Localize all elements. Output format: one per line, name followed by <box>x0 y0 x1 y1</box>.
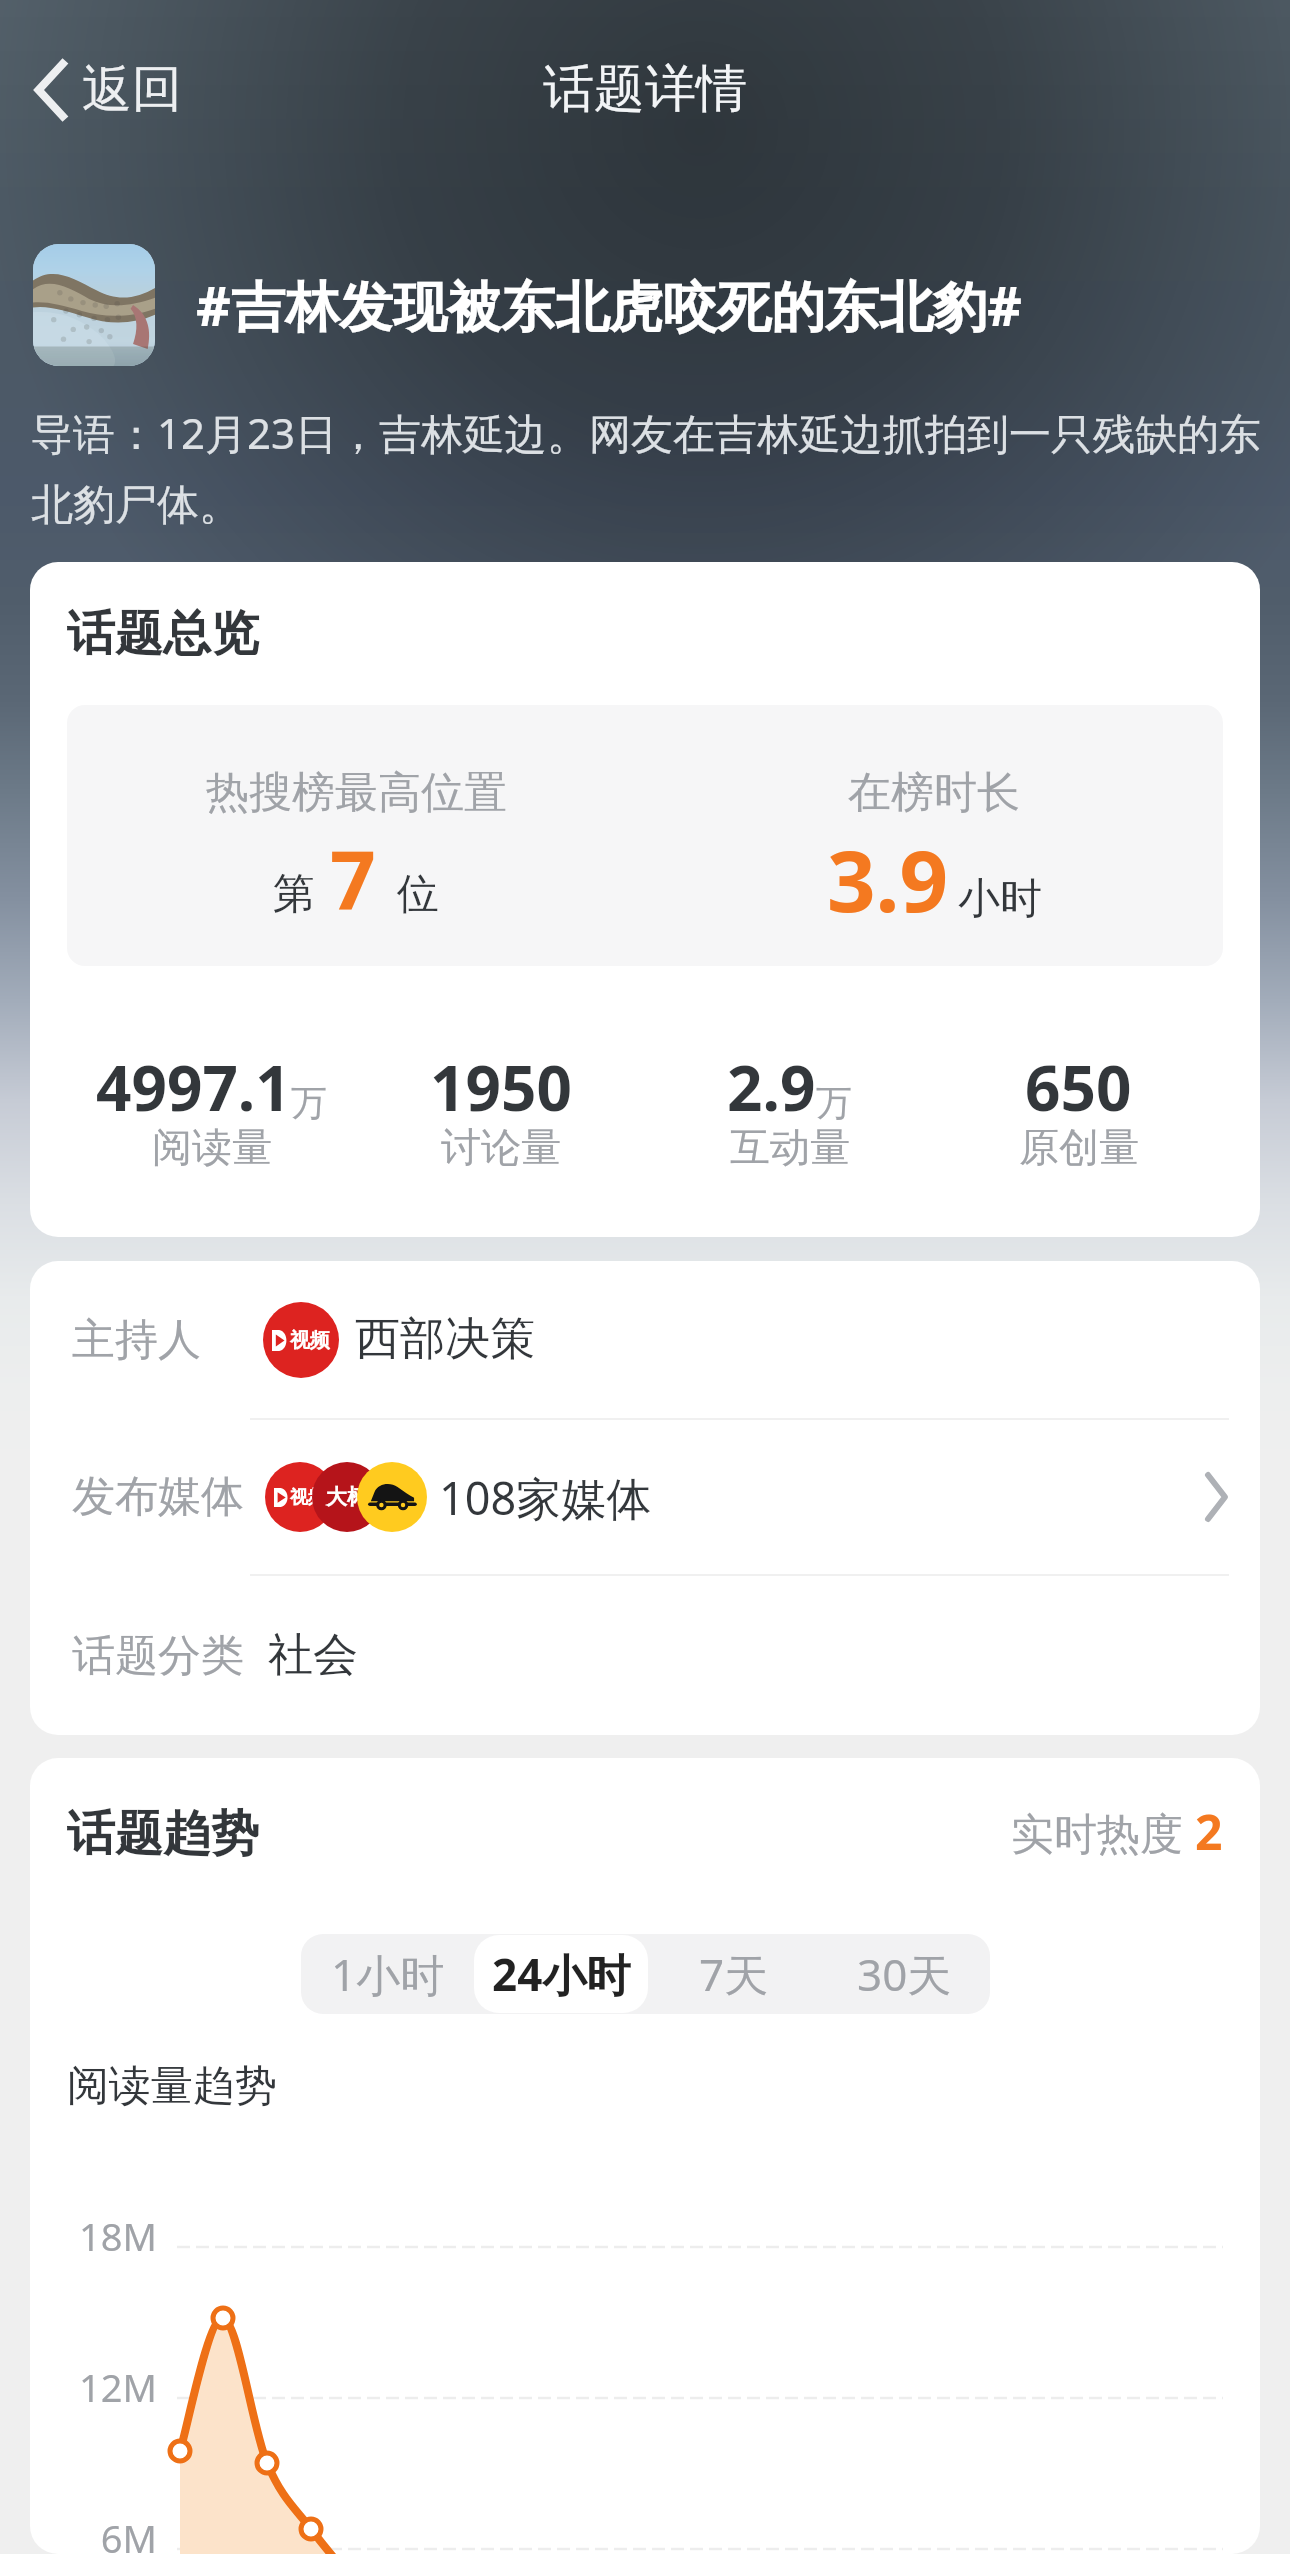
staticText: 主持人 <box>72 1313 201 1367</box>
staticText: 热搜榜最高位置 <box>206 766 507 820</box>
staticText: 2.9 <box>727 1045 816 1129</box>
staticText: 3.9 <box>827 821 949 937</box>
button[interactable]: 1小时 <box>301 1935 474 2013</box>
staticText: 万 <box>291 1080 327 1125</box>
staticText: 108家媒体 <box>439 1467 652 1528</box>
staticText: 话题分类 <box>72 1629 244 1683</box>
staticText: 24小时 <box>492 1944 631 2004</box>
staticText: 30天 <box>857 1944 952 2004</box>
staticText: 万 <box>816 1080 852 1125</box>
staticText: 讨论量 <box>441 1122 561 1172</box>
staticText: 2 <box>1195 1799 1223 1864</box>
staticText: 位 <box>397 868 439 921</box>
staticText: 7 <box>330 824 376 933</box>
staticText: 发布媒体 <box>72 1470 244 1524</box>
button[interactable]: #吉林发现被东北虎咬死的东北豹# <box>0 244 1290 366</box>
staticText: 阅读量趋势 <box>67 2060 277 2113</box>
staticText: 视频 <box>290 1486 326 1509</box>
button[interactable]: 发布媒体 <box>72 1420 1229 1574</box>
other: 查看全部媒体 <box>1204 1475 1229 1519</box>
staticText: 阅读量 <box>152 1122 272 1172</box>
staticText: 互动量 <box>730 1122 850 1172</box>
staticText: 实时热度 <box>1011 1808 1183 1862</box>
staticText: #吉林发现被东北虎咬死的东北豹# <box>196 268 1022 342</box>
staticText: 大树 <box>326 1484 368 1510</box>
button[interactable]: 30天 <box>819 1935 990 2013</box>
staticText: 12M <box>72 2361 157 2413</box>
staticText: 西部决策 <box>355 1311 535 1368</box>
staticText: 话题总览 <box>67 604 259 664</box>
staticText: 650 <box>1025 1045 1132 1129</box>
staticText: 返回 <box>82 58 182 121</box>
staticText: 小时 <box>958 873 1042 926</box>
staticText: 导语：12月23日，吉林延边。网友在吉林延边抓拍到一只残缺的东北豹尸体。 <box>31 404 1288 532</box>
staticText: 社会 <box>268 1627 358 1684</box>
staticText: 1小时 <box>331 1944 445 2004</box>
staticText: 在榜时长 <box>848 766 1020 820</box>
button[interactable]: 24小时 <box>474 1935 648 2013</box>
button[interactable]: 主持人 <box>72 1261 1229 1418</box>
staticText: 话题趋势 <box>67 1804 259 1864</box>
staticText: 视频 <box>290 1328 330 1353</box>
staticText: 6M <box>72 2512 157 2554</box>
staticText: 4997.1 <box>96 1045 291 1129</box>
staticText: 话题详情 <box>543 57 747 121</box>
staticText: 18M <box>72 2210 157 2262</box>
staticText: 7天 <box>699 1944 769 2004</box>
button[interactable]: 话题分类 <box>72 1576 1229 1735</box>
staticText: 1950 <box>430 1045 572 1129</box>
staticText: 原创量 <box>1019 1122 1139 1172</box>
staticText: 第 <box>273 868 315 921</box>
button[interactable]: 返回 <box>24 44 194 135</box>
button[interactable]: 7天 <box>648 1935 819 2013</box>
